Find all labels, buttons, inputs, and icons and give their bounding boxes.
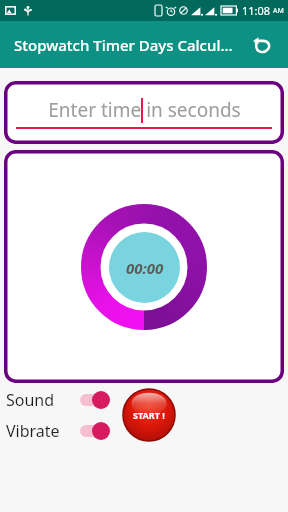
staticText: 00:00: [126, 258, 164, 278]
button[interactable]: Enter time in seconds: [4, 81, 284, 144]
staticText: Enter time in seconds: [48, 97, 241, 123]
staticText: Vibrate: [6, 420, 60, 442]
staticText: AM: [273, 6, 284, 16]
button[interactable]: Sound: [6, 389, 110, 411]
staticText: Stopwatch Timer Days Calcul…: [14, 35, 233, 55]
button[interactable]: Vibrate: [6, 420, 110, 442]
button[interactable]: Back: [244, 27, 280, 63]
staticText: START !: [133, 409, 165, 421]
staticText: Sound: [6, 389, 55, 411]
staticText: 11:08: [242, 3, 271, 18]
button[interactable]: START !: [123, 389, 175, 441]
